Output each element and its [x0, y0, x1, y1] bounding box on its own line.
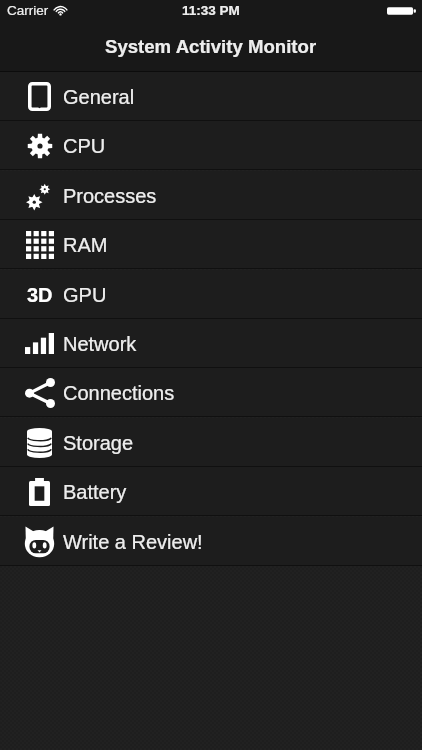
staticText: GPU [63, 284, 107, 306]
button[interactable]: RAM [0, 220, 422, 269]
staticText: RAM [63, 234, 108, 256]
staticText: General [63, 86, 135, 108]
button[interactable]: Write a Review! [0, 517, 422, 566]
button[interactable]: 3D [0, 270, 422, 319]
button[interactable]: Battery [0, 467, 422, 516]
staticText: 3D [27, 284, 53, 306]
button[interactable]: Storage [0, 418, 422, 467]
button[interactable]: General [0, 72, 422, 121]
button[interactable]: Network [0, 319, 422, 368]
staticText: Battery [63, 481, 127, 503]
staticText: Carrier [7, 3, 49, 18]
staticText: Storage [63, 432, 134, 454]
other: Battery full [387, 5, 416, 17]
staticText: CPU [63, 135, 106, 157]
button[interactable]: Processes [0, 171, 422, 220]
button[interactable]: Connections [0, 368, 422, 417]
staticText: Processes [63, 185, 157, 207]
staticText: System Activity Monitor [105, 36, 317, 57]
button[interactable]: CPU [0, 121, 422, 170]
other: Wi-Fi signal [54, 4, 67, 17]
staticText: Write a Review! [63, 531, 203, 553]
staticText: 11:33 PM [182, 3, 240, 18]
staticText: Network [63, 333, 137, 355]
staticText: Connections [63, 382, 175, 404]
